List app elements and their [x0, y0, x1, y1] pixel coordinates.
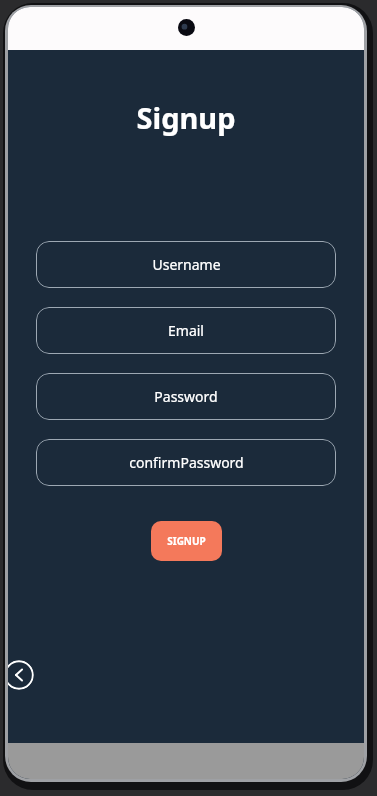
staticText: Password — [154, 387, 218, 406]
staticText: Signup — [136, 98, 236, 137]
button[interactable]: Password — [36, 373, 336, 420]
button[interactable]: Back — [8, 660, 34, 690]
staticText: confirmPassword — [129, 453, 244, 472]
staticText: SIGNUP — [167, 534, 206, 548]
staticText: Username — [152, 255, 221, 274]
button[interactable]: Email — [36, 307, 336, 354]
staticText: Email — [168, 321, 204, 340]
button[interactable]: Username — [36, 241, 336, 288]
button[interactable]: confirmPassword — [36, 439, 336, 486]
button[interactable]: SIGNUP — [151, 521, 222, 561]
